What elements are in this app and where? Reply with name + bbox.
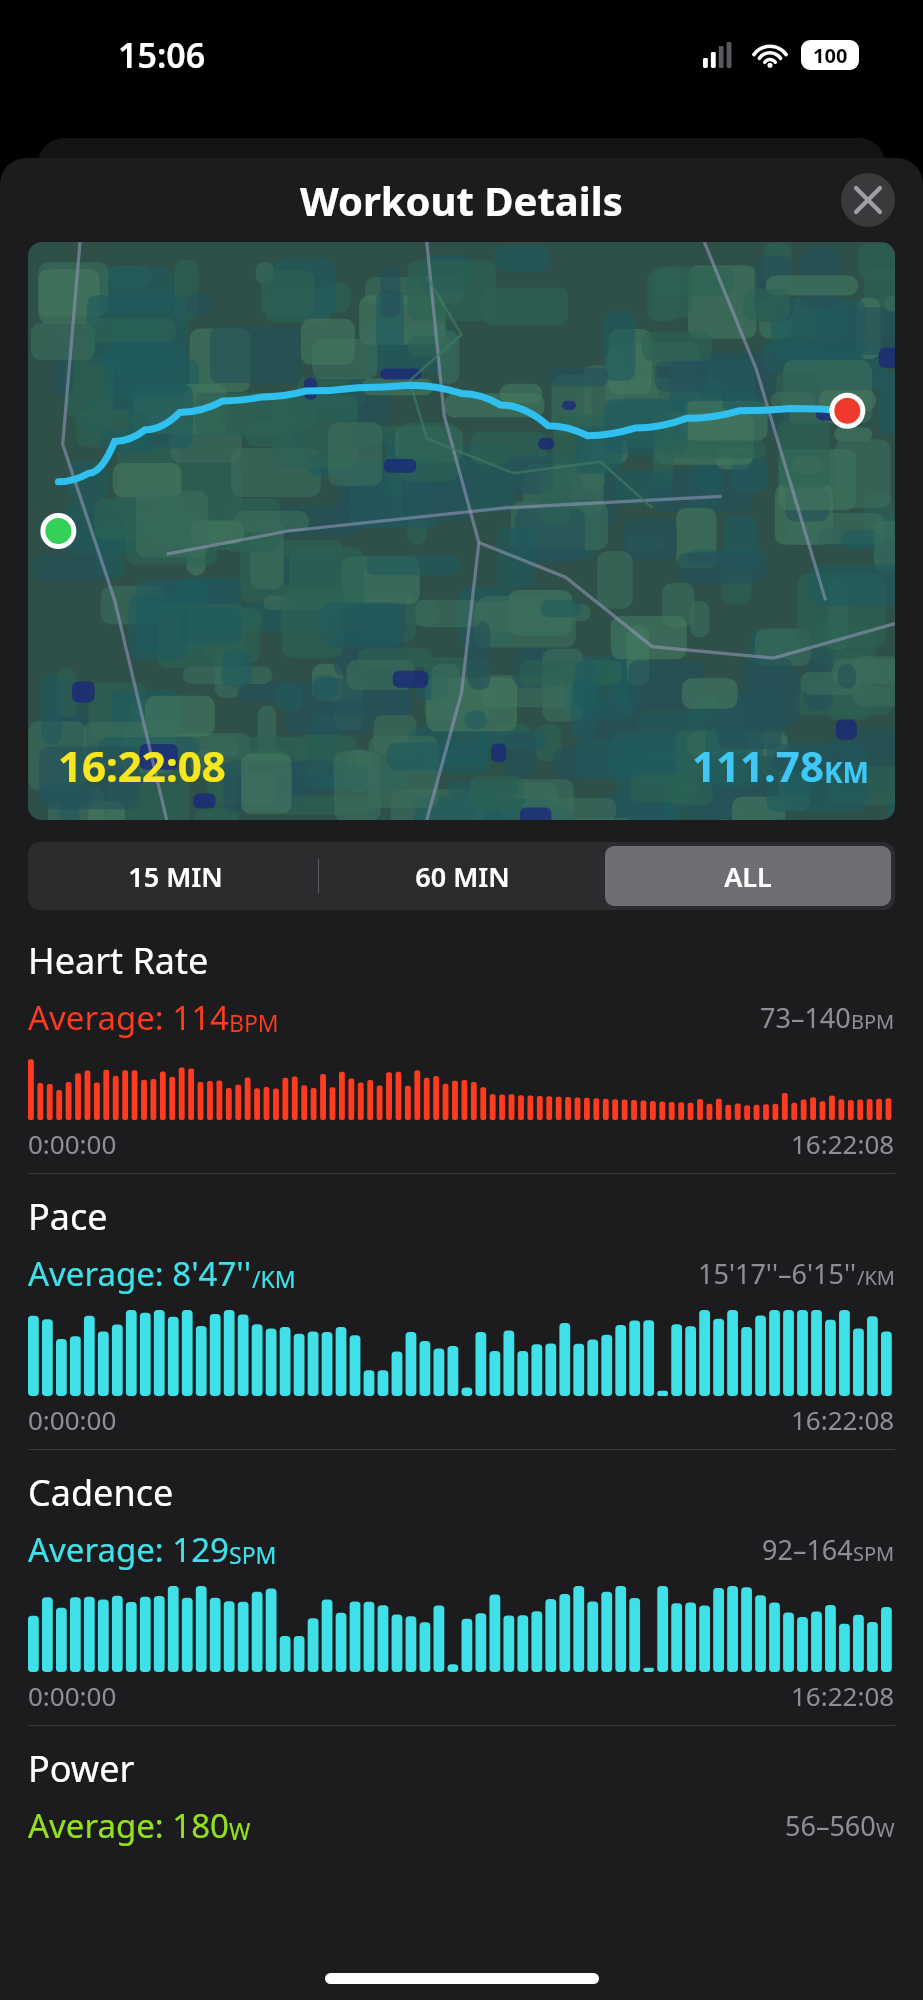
staticText: W <box>229 1815 251 1846</box>
staticText: Pace <box>28 1192 108 1241</box>
button[interactable]: Close <box>841 173 895 227</box>
staticText: BPM <box>229 1007 279 1038</box>
staticText: 92–164 <box>762 1531 853 1568</box>
staticText: Average: 114 <box>28 995 229 1040</box>
staticText: 16:22:08 <box>58 737 226 794</box>
staticText: Average: 129 <box>28 1527 229 1572</box>
staticText: /KM <box>252 1263 296 1294</box>
staticText: Cadence <box>28 1468 174 1517</box>
staticText: 16:22:08 <box>791 1678 895 1713</box>
staticText: Power <box>28 1744 135 1793</box>
staticText: 15:06 <box>118 32 206 78</box>
staticText: 0:00:00 <box>28 1402 117 1437</box>
button[interactable]: 15 MIN <box>32 846 318 906</box>
staticText: 16:22:08 <box>791 1402 895 1437</box>
staticText: 0:00:00 <box>28 1126 117 1161</box>
staticText: Heart Rate <box>28 936 209 985</box>
staticText: 0:00:00 <box>28 1678 117 1713</box>
staticText: 100 <box>813 42 848 69</box>
staticText: Workout Details <box>300 173 623 227</box>
staticText: BPM <box>851 1008 895 1035</box>
staticText: 15 MIN <box>128 858 223 895</box>
staticText: SPM <box>853 1540 895 1567</box>
staticText: KM <box>824 753 869 791</box>
staticText: 16:22:08 <box>791 1126 895 1161</box>
staticText: /KM <box>857 1264 895 1291</box>
staticText: 60 MIN <box>415 858 510 895</box>
button[interactable]: 60 MIN <box>319 846 605 906</box>
button[interactable]: ALL <box>605 846 891 906</box>
staticText: W <box>876 1816 895 1843</box>
staticText: ALL <box>724 858 772 895</box>
staticText: 73–140 <box>760 999 851 1036</box>
staticText: Average: 8'47'' <box>28 1251 252 1296</box>
staticText: 15'17''–6'15'' <box>698 1255 857 1292</box>
staticText: Average: 180 <box>28 1803 229 1848</box>
staticText: 111.78 <box>692 737 824 794</box>
staticText: SPM <box>229 1539 277 1570</box>
staticText: 56–560 <box>785 1807 876 1844</box>
button[interactable]: Route map <box>28 242 895 820</box>
